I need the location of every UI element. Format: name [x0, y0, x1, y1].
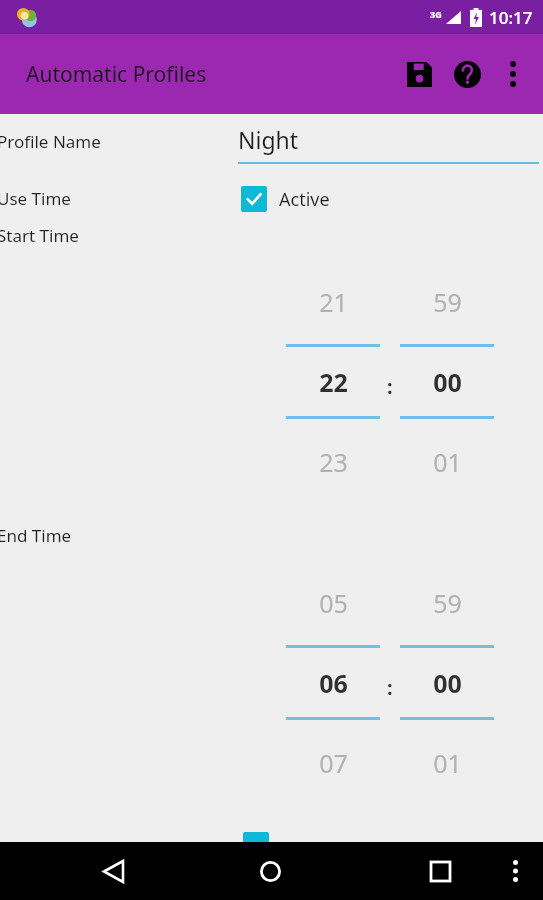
staticText: Use Time: [0, 187, 71, 210]
staticText: 07: [319, 746, 348, 780]
staticText: Profile Name: [0, 130, 101, 153]
staticText: 23: [319, 445, 348, 479]
button[interactable]: Back: [85, 843, 141, 899]
staticText: 01: [433, 746, 462, 780]
staticText: 22: [319, 365, 348, 399]
button[interactable]: Home: [242, 843, 298, 899]
staticText: 00: [433, 365, 462, 399]
staticText: 3G: [430, 8, 442, 20]
button[interactable]: 05: [286, 560, 380, 805]
button[interactable]: Help: [443, 50, 491, 98]
staticText: Start Time: [0, 224, 79, 247]
button[interactable]: 59: [400, 259, 494, 504]
staticText: 10:17: [489, 6, 533, 29]
staticText: Night: [238, 124, 299, 155]
button[interactable]: Active: [241, 186, 330, 212]
staticText: 59: [433, 586, 462, 620]
staticText: 05: [319, 586, 348, 620]
button[interactable]: 59: [400, 560, 494, 805]
staticText: 59: [433, 285, 462, 319]
button[interactable]: 21: [286, 259, 380, 504]
staticText: 06: [319, 666, 348, 700]
staticText: :: [387, 674, 393, 701]
button[interactable]: [243, 832, 269, 844]
button[interactable]: Night: [238, 124, 539, 164]
button[interactable]: More options: [491, 52, 535, 96]
staticText: :: [387, 373, 393, 400]
button[interactable]: Save: [395, 50, 443, 98]
staticText: Active: [279, 187, 330, 212]
staticText: 21: [319, 285, 348, 319]
button[interactable]: Menu: [493, 849, 537, 893]
staticText: 00: [433, 666, 462, 700]
staticText: End Time: [0, 524, 72, 547]
staticText: Automatic Profiles: [26, 60, 207, 89]
button[interactable]: Recent apps: [412, 843, 468, 899]
staticText: 01: [433, 445, 462, 479]
